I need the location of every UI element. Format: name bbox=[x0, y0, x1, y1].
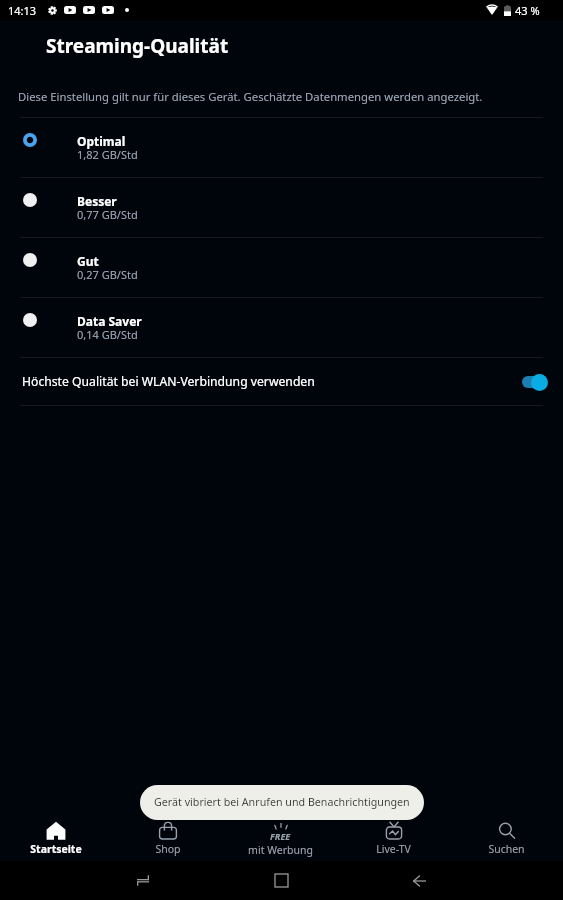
staticText: Streaming-Qualität bbox=[46, 33, 229, 59]
button[interactable]: Switch apps bbox=[109, 861, 177, 900]
staticText: 14:13 bbox=[8, 3, 37, 18]
staticText: 0,14 GB/Std bbox=[77, 327, 138, 342]
button[interactable]: Live-TV bbox=[337, 820, 450, 856]
button[interactable]: Höchste Qualität bei WLAN-Verbindung ver… bbox=[22, 358, 548, 405]
button[interactable]: Home bbox=[247, 861, 315, 900]
staticText: Diese Einstellung gilt nur für dieses Ge… bbox=[18, 89, 483, 104]
staticText: Optimal bbox=[77, 133, 126, 149]
staticText: 1,82 GB/Std bbox=[77, 147, 138, 162]
staticText: Gut bbox=[77, 253, 99, 269]
staticText: mit Werbung bbox=[248, 843, 313, 857]
staticText: Suchen bbox=[488, 842, 525, 856]
button[interactable]: Suchen bbox=[450, 820, 563, 856]
button[interactable]: Gut bbox=[0, 238, 563, 297]
staticText: Besser bbox=[77, 193, 117, 209]
staticText: Höchste Qualität bei WLAN-Verbindung ver… bbox=[22, 373, 315, 390]
button[interactable]: Back bbox=[385, 861, 453, 900]
button[interactable]: Optimal bbox=[0, 118, 563, 177]
staticText: 43 % bbox=[515, 3, 540, 18]
staticText: Gerät vibriert bei Anrufen und Benachric… bbox=[154, 795, 410, 810]
staticText: Data Saver bbox=[77, 313, 142, 329]
staticText: FREE bbox=[270, 830, 291, 842]
button[interactable]: FREE bbox=[224, 820, 337, 857]
button[interactable]: Startseite bbox=[0, 820, 112, 856]
button[interactable]: Gerät vibriert bei Anrufen und Benachric… bbox=[140, 785, 424, 820]
staticText: 0,77 GB/Std bbox=[77, 207, 138, 222]
staticText: 0,27 GB/Std bbox=[77, 267, 138, 282]
staticText: Startseite bbox=[30, 842, 82, 856]
button[interactable]: Shop bbox=[112, 820, 224, 856]
button[interactable]: Data Saver bbox=[0, 298, 563, 357]
staticText: Shop bbox=[155, 842, 181, 856]
staticText: Live-TV bbox=[376, 842, 411, 856]
button[interactable]: Besser bbox=[0, 178, 563, 237]
